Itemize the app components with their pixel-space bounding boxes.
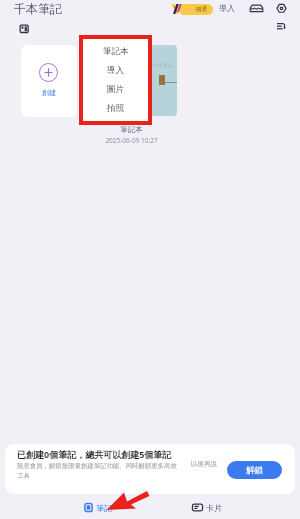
button[interactable]: 拍照 [79, 99, 152, 118]
staticText: 2025-06-09 10:27 [105, 136, 158, 145]
staticText: 拍照 [107, 103, 124, 114]
staticText: 導入 [219, 3, 235, 13]
button[interactable]: 導入 [79, 61, 152, 80]
staticText: 以後再說 [191, 460, 217, 468]
staticText: 開通 [196, 6, 207, 13]
button[interactable]: Layout [16, 21, 32, 37]
button[interactable]: 千本筆記 [93, 45, 177, 116]
button[interactable]: 以後再說 [191, 460, 217, 468]
button[interactable]: 解鎖 [227, 461, 282, 479]
staticText: 千本筆記 [14, 1, 62, 16]
button[interactable]: 導入 [219, 3, 235, 13]
staticText: 卡片 [206, 503, 222, 513]
button[interactable]: 筆記本 [79, 42, 152, 61]
staticText: 筆記 [96, 503, 112, 513]
button[interactable]: Sort [273, 19, 289, 35]
button[interactable]: 筆記 [84, 496, 112, 519]
staticText: 已創建0個筆記，總共可以創建5個筆記 [17, 448, 172, 460]
button[interactable]: VIP [170, 2, 214, 16]
staticText: 創建 [42, 88, 56, 97]
button[interactable]: Settings [274, 1, 289, 16]
button[interactable]: 卡片 [192, 496, 222, 519]
staticText: 圖片 [107, 84, 124, 95]
staticText: 筆記本 [103, 46, 129, 57]
staticText: 千本筆記 [153, 62, 173, 68]
staticText: 解鎖 [246, 465, 263, 476]
button[interactable]: 創建 [21, 45, 77, 117]
button[interactable]: 圖片 [79, 80, 152, 99]
staticText: 導入 [107, 65, 124, 76]
staticText: 筆記本 [120, 125, 143, 134]
staticText: 隨意會員，解鎖無限量創建筆記功能、同時解鎖更多高效工具 [17, 462, 179, 480]
button[interactable]: Store [249, 1, 264, 16]
